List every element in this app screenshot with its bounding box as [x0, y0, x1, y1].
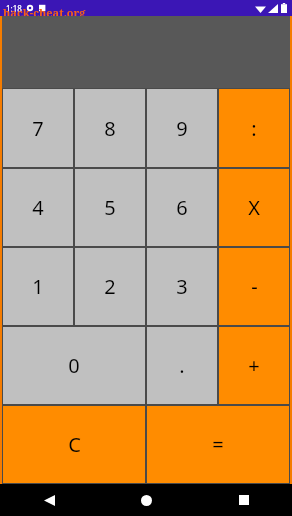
button[interactable]: 9: [147, 89, 217, 167]
button[interactable]: 8: [75, 89, 145, 167]
staticText: hack-cheat.org: [3, 5, 86, 16]
button[interactable]: 0: [3, 327, 145, 404]
button[interactable]: .: [147, 327, 217, 404]
button[interactable]: 1: [3, 248, 73, 325]
button[interactable]: 5: [75, 169, 145, 246]
button[interactable]: 7: [3, 89, 73, 167]
staticText: .: [179, 352, 185, 379]
staticText: 5: [104, 194, 116, 221]
staticText: :: [251, 115, 257, 142]
staticText: 9: [176, 115, 188, 142]
button[interactable]: 2: [75, 248, 145, 325]
staticText: 2: [104, 273, 116, 300]
button[interactable]: Recent apps: [195, 484, 292, 516]
staticText: 4: [32, 194, 44, 221]
staticText: +: [248, 352, 260, 379]
staticText: X: [248, 194, 260, 221]
button[interactable]: X: [219, 169, 289, 246]
button[interactable]: :: [219, 89, 289, 167]
button[interactable]: 6: [147, 169, 217, 246]
staticText: 7: [32, 115, 44, 142]
button[interactable]: 3: [147, 248, 217, 325]
staticText: 0: [68, 352, 80, 379]
staticText: =: [212, 431, 224, 458]
staticText: 1: [32, 273, 44, 300]
button[interactable]: C: [3, 406, 145, 483]
button[interactable]: 4: [3, 169, 73, 246]
button[interactable]: =: [147, 406, 289, 483]
staticText: C: [68, 431, 81, 458]
staticText: 8: [104, 115, 116, 142]
staticText: -: [251, 273, 258, 300]
button[interactable]: +: [219, 327, 289, 404]
staticText: 1:18: [6, 3, 22, 14]
button[interactable]: -: [219, 248, 289, 325]
staticText: 3: [176, 273, 188, 300]
staticText: 6: [176, 194, 188, 221]
button[interactable]: Back: [0, 484, 98, 516]
button[interactable]: Home: [98, 484, 195, 516]
